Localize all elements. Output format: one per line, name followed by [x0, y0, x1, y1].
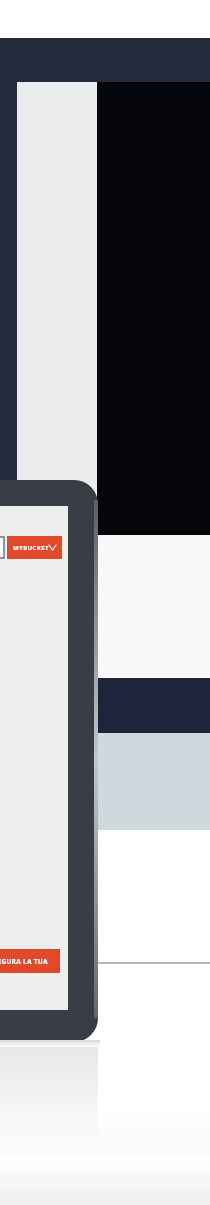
button[interactable]: MYBUCKET: [7, 536, 62, 559]
button[interactable]: [0, 506, 68, 1010]
button[interactable]: Menu: [0, 537, 4, 558]
button[interactable]: CONFIGURA LA TUA: [0, 949, 60, 973]
button[interactable]: [17, 82, 97, 493]
staticText: MYBUCKET: [13, 544, 49, 552]
staticText: CONFIGURA LA TUA: [0, 957, 48, 966]
